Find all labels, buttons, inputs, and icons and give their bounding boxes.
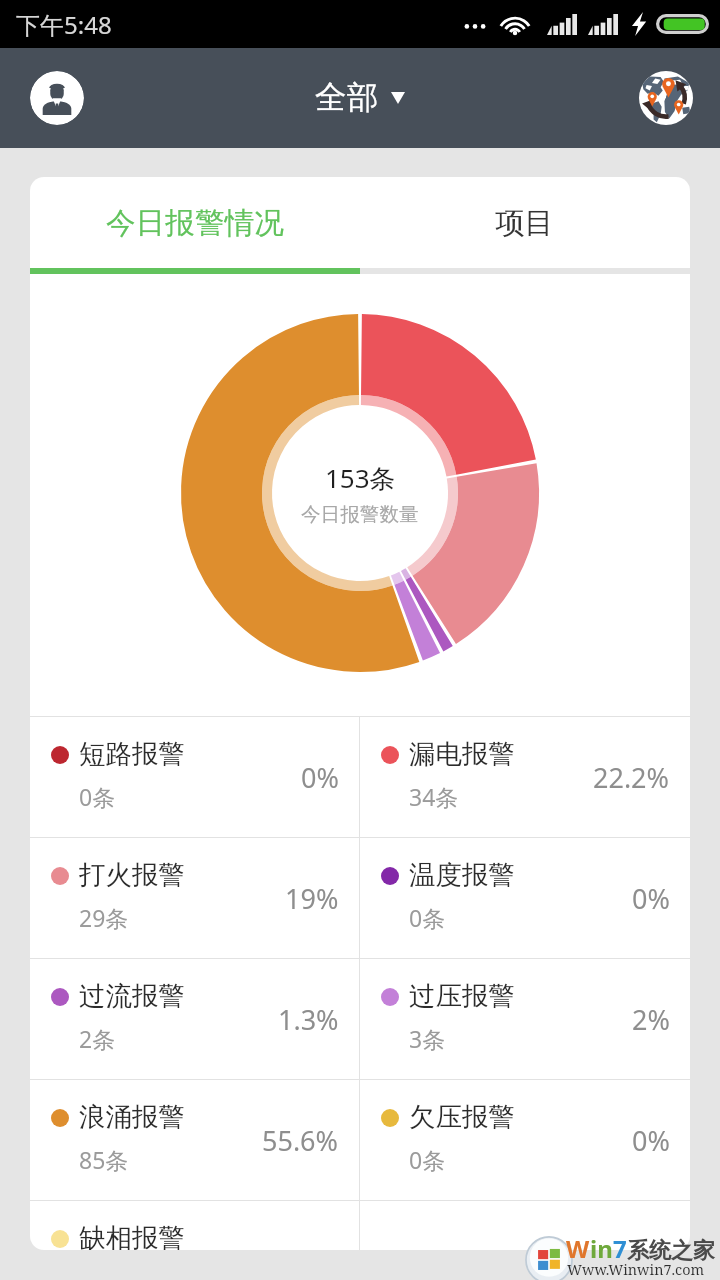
staticText: 1.3%: [278, 1001, 339, 1038]
button[interactable]: 温度报警: [360, 838, 690, 958]
staticText: 22.2%: [593, 759, 670, 796]
staticText: 系统之家: [627, 1237, 715, 1265]
staticText: 55.6%: [262, 1122, 339, 1159]
button[interactable]: Map: [639, 71, 693, 125]
staticText: 短路报警: [79, 738, 185, 771]
staticText: 0条: [79, 781, 116, 812]
staticText: 全部: [315, 78, 379, 118]
staticText: 今日报警数量: [301, 502, 419, 527]
staticText: 153条: [325, 460, 396, 496]
staticText: 下午5:48: [16, 8, 112, 41]
staticText: 34条: [409, 781, 459, 812]
button[interactable]: 今日报警情况: [30, 177, 360, 268]
staticText: 打火报警: [79, 859, 185, 892]
button[interactable]: 欠压报警: [360, 1080, 690, 1200]
staticText: 项目: [495, 204, 555, 241]
staticText: 浪涌报警: [79, 1101, 185, 1134]
staticText: in: [590, 1232, 613, 1265]
staticText: 85条: [79, 1144, 129, 1175]
button[interactable]: 项目: [360, 177, 690, 268]
staticText: 29条: [79, 902, 129, 933]
staticText: 0%: [632, 880, 670, 917]
button[interactable]: User profile: [30, 71, 84, 125]
button[interactable]: 打火报警: [30, 838, 359, 958]
staticText: W: [566, 1232, 590, 1265]
staticText: 缺相报警: [79, 1222, 185, 1250]
staticText: 欠压报警: [409, 1101, 515, 1134]
staticText: 今日报警情况: [106, 204, 284, 241]
staticText: 温度报警: [409, 859, 515, 892]
staticText: 2%: [632, 1001, 670, 1038]
staticText: 过流报警: [79, 980, 185, 1013]
button[interactable]: 全部: [315, 78, 405, 118]
staticText: 2条: [79, 1023, 116, 1054]
staticText: 19%: [285, 880, 339, 917]
staticText: 过压报警: [409, 980, 515, 1013]
button[interactable]: 过流报警: [30, 959, 359, 1079]
staticText: 0%: [301, 759, 339, 796]
staticText: 0条: [409, 1144, 446, 1175]
button[interactable]: 浪涌报警: [30, 1080, 359, 1200]
staticText: 0条: [409, 902, 446, 933]
staticText: Www.Winwin7.com: [567, 1260, 705, 1280]
button[interactable]: 短路报警: [30, 717, 359, 837]
staticText: 7: [613, 1232, 627, 1265]
button[interactable]: 过压报警: [360, 959, 690, 1079]
button[interactable]: 缺相报警: [30, 1201, 359, 1250]
staticText: 3条: [409, 1023, 446, 1054]
staticText: 漏电报警: [409, 738, 515, 771]
staticText: 0%: [632, 1122, 670, 1159]
button[interactable]: 漏电报警: [360, 717, 690, 837]
